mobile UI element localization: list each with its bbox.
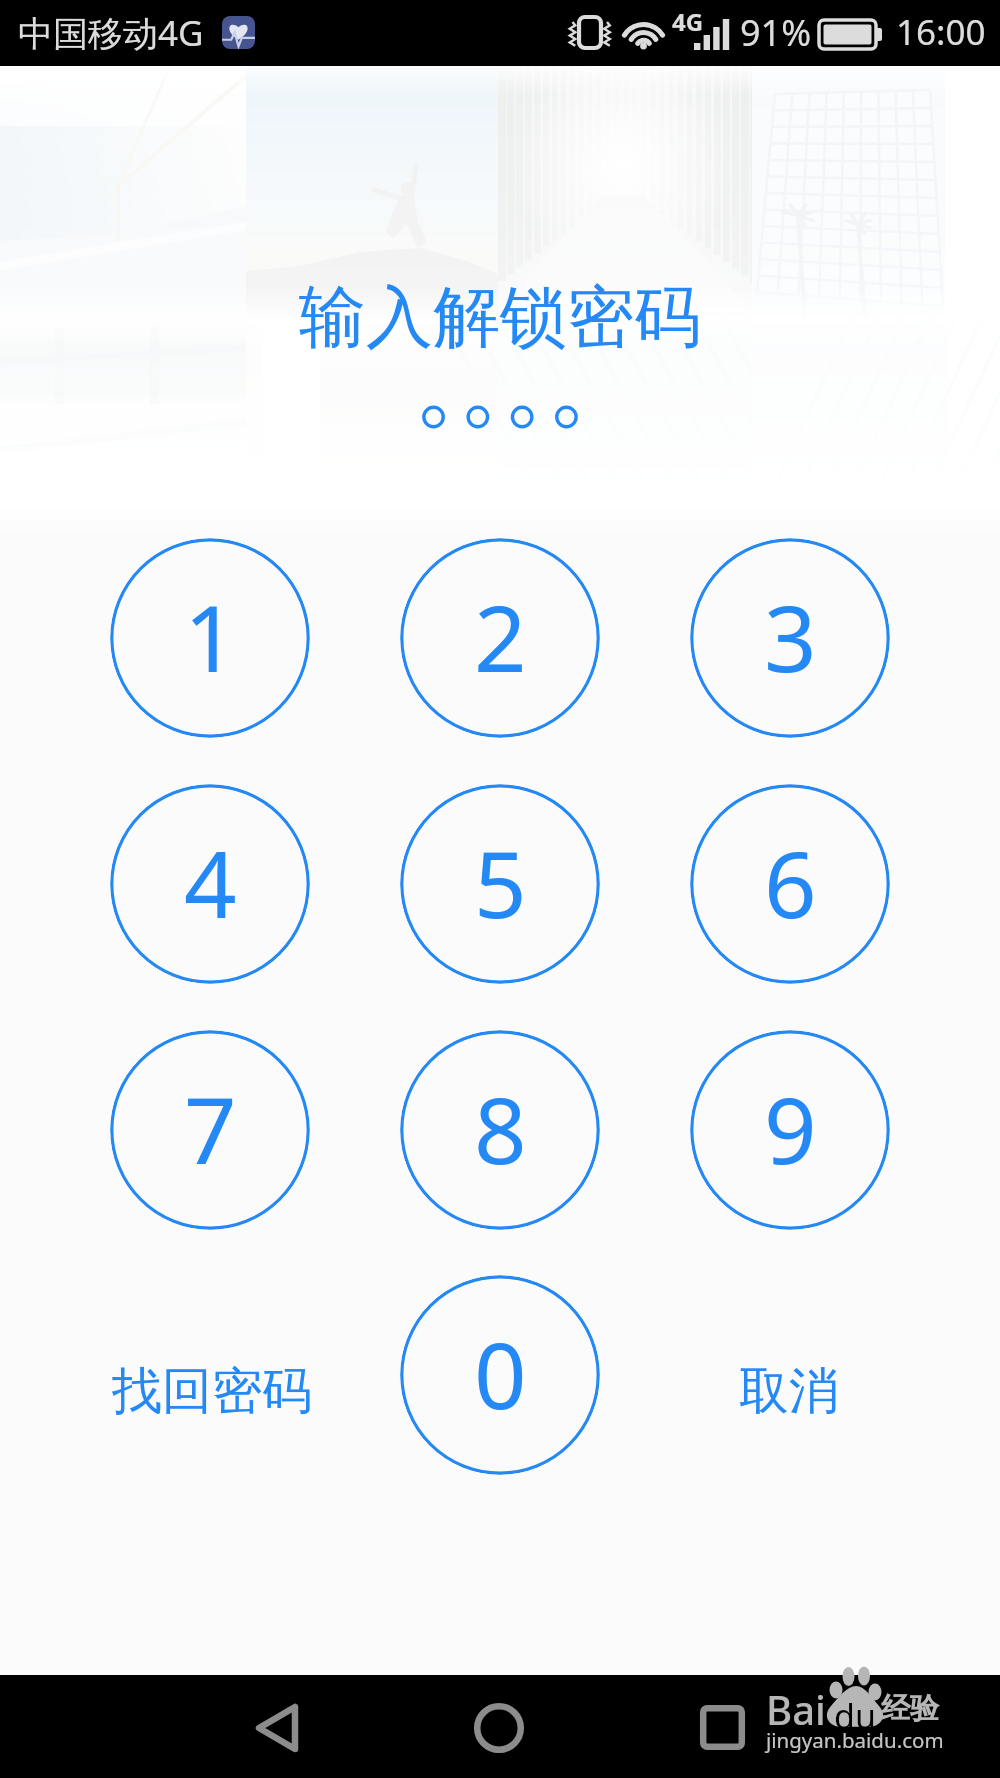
staticText: 输入解锁密码 bbox=[299, 275, 701, 359]
button[interactable]: 取消 bbox=[733, 1350, 845, 1433]
button[interactable]: 2 bbox=[400, 538, 600, 738]
button[interactable]: 3 bbox=[690, 538, 890, 738]
staticText: 7 bbox=[184, 1066, 237, 1191]
staticText: jingyan.baidu.com bbox=[766, 1726, 944, 1754]
button[interactable]: 8 bbox=[400, 1030, 600, 1230]
staticText: 6 bbox=[764, 820, 817, 945]
staticText: 0 bbox=[474, 1311, 527, 1436]
staticText: 3 bbox=[764, 574, 817, 699]
staticText: 9 bbox=[764, 1066, 817, 1191]
staticText: du bbox=[834, 1693, 876, 1739]
staticText: 16:00 bbox=[896, 8, 986, 56]
staticText: 8 bbox=[474, 1066, 527, 1191]
staticText: 找回密码 bbox=[112, 1360, 312, 1423]
button[interactable]: 4 bbox=[110, 784, 310, 984]
staticText: 91% bbox=[740, 8, 812, 57]
staticText: 中国移动4G bbox=[18, 9, 204, 57]
button[interactable]: Back bbox=[222, 1677, 332, 1778]
button[interactable]: 6 bbox=[690, 784, 890, 984]
staticText: 1 bbox=[184, 574, 237, 699]
staticText: 经验 bbox=[881, 1690, 939, 1727]
button[interactable]: 0 bbox=[400, 1275, 600, 1475]
button[interactable]: Home bbox=[444, 1677, 554, 1778]
button[interactable]: Recent apps bbox=[667, 1677, 777, 1778]
button[interactable]: 5 bbox=[400, 784, 600, 984]
button[interactable]: 7 bbox=[110, 1030, 310, 1230]
button[interactable]: 9 bbox=[690, 1030, 890, 1230]
staticText: 4 bbox=[184, 820, 237, 945]
staticText: Bai bbox=[766, 1682, 826, 1736]
button[interactable]: 1 bbox=[110, 538, 310, 738]
staticText: 取消 bbox=[739, 1360, 839, 1423]
button[interactable]: 找回密码 bbox=[106, 1350, 318, 1433]
staticText: 5 bbox=[474, 820, 527, 945]
staticText: 2 bbox=[474, 574, 527, 699]
staticText: 4G bbox=[672, 5, 704, 38]
